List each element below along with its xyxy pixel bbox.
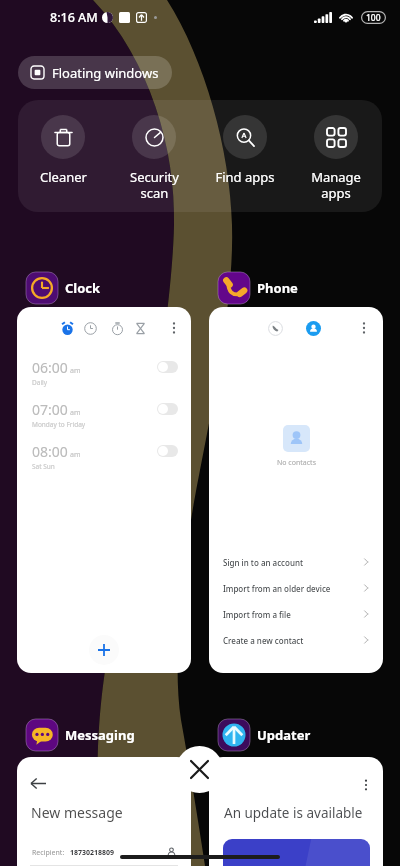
button[interactable]: Back: [31, 776, 46, 791]
staticText: 100: [366, 12, 381, 24]
button[interactable]: Security scan: [109, 100, 199, 212]
button[interactable]: More options: [357, 321, 371, 335]
button[interactable]: World clock: [84, 322, 97, 335]
button[interactable]: More options: [167, 321, 181, 335]
staticText: Recipient:: [32, 848, 65, 858]
staticText: Cleaner: [40, 168, 87, 186]
staticText: Updater: [257, 726, 311, 744]
button[interactable]: Floating windows: [18, 56, 172, 89]
button[interactable]: Manage apps: [291, 100, 381, 212]
staticText: Phone: [257, 279, 298, 297]
staticText: 08:00: [32, 442, 68, 461]
button[interactable]: Add alarm: [89, 635, 119, 665]
staticText: Manage apps: [311, 168, 361, 201]
staticText: Import from a file: [223, 609, 291, 620]
staticText: Import from an older device: [223, 583, 331, 594]
button[interactable]: Updater: [211, 715, 311, 755]
button[interactable]: Import from a file: [209, 601, 383, 627]
staticText: Daily: [32, 378, 48, 387]
staticText: No contacts: [277, 458, 316, 468]
staticText: am: [70, 366, 81, 376]
button[interactable]: More options: [209, 757, 383, 866]
button[interactable]: Toggle alarm 08:00: [157, 445, 178, 457]
staticText: 18730218809: [70, 848, 115, 858]
button[interactable]: Alarm: [61, 322, 74, 335]
button[interactable]: Recent calls: [268, 321, 283, 336]
button[interactable]: Toggle alarm 06:00: [157, 361, 178, 373]
button[interactable]: Clock: [19, 268, 101, 308]
button[interactable]: Contacts: [306, 321, 321, 336]
button[interactable]: Timer: [134, 322, 147, 335]
staticText: New message: [31, 803, 123, 822]
button[interactable]: Messaging: [19, 715, 135, 755]
staticText: Clock: [65, 279, 101, 297]
staticText: 07:00: [32, 400, 68, 419]
button[interactable]: Pick contact: [166, 847, 177, 858]
button[interactable]: Stopwatch: [111, 322, 124, 335]
staticText: Create a new contact: [223, 635, 304, 646]
staticText: Find apps: [215, 168, 275, 186]
button[interactable]: Phone: [211, 268, 298, 308]
staticText: Security scan: [130, 168, 179, 201]
button[interactable]: Sign in to an account: [209, 549, 383, 575]
button[interactable]: Toggle alarm 07:00: [157, 403, 178, 415]
button[interactable]: More options: [360, 779, 372, 791]
staticText: 06:00: [32, 358, 68, 377]
button[interactable]: Recent calls: [209, 307, 383, 673]
staticText: Floating windows: [52, 64, 159, 82]
button[interactable]: Back: [17, 757, 191, 866]
staticText: Monday to Friday: [32, 420, 86, 429]
button[interactable]: Alarm: [17, 307, 191, 673]
staticText: Messaging: [65, 726, 135, 744]
button[interactable]: Import from an older device: [209, 575, 383, 601]
staticText: 8:16 AM: [50, 9, 98, 26]
button[interactable]: Find apps: [200, 100, 290, 212]
staticText: am: [70, 408, 81, 418]
staticText: An update is available: [224, 804, 363, 822]
staticText: Sign in to an account: [223, 557, 303, 568]
staticText: am: [70, 450, 81, 460]
button[interactable]: Create a new contact: [209, 627, 383, 653]
button[interactable]: Close all: [176, 746, 223, 793]
button[interactable]: Cleaner: [18, 100, 108, 212]
staticText: Sat Sun: [32, 462, 55, 471]
